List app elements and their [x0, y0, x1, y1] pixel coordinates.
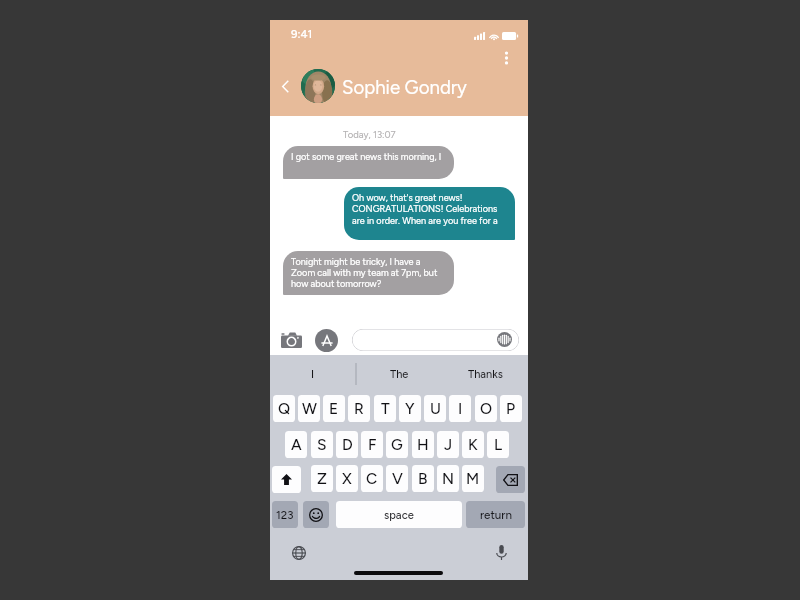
staticText: O: [480, 399, 493, 418]
staticText: Today, 13:07: [343, 129, 396, 140]
button[interactable]: L: [487, 431, 509, 458]
staticText: H: [417, 435, 429, 454]
staticText: A: [291, 435, 302, 454]
button[interactable]: Camera: [279, 330, 303, 349]
button[interactable]: I: [449, 395, 471, 422]
button[interactable]: Change keyboard: [289, 543, 309, 563]
button[interactable]: X: [336, 465, 358, 492]
button[interactable]: F: [361, 431, 383, 458]
staticText: E: [329, 399, 339, 418]
staticText: U: [430, 399, 441, 418]
button[interactable]: G: [386, 431, 408, 458]
button[interactable]: B: [412, 465, 434, 492]
staticText: R: [354, 399, 364, 418]
button[interactable]: N: [437, 465, 459, 492]
button[interactable]: S: [311, 431, 333, 458]
staticText: W: [302, 399, 317, 418]
staticText: Tonight might be tricky, I have a Zoom c…: [291, 256, 438, 289]
staticText: S: [317, 435, 327, 454]
button[interactable]: J: [437, 431, 459, 458]
staticText: B: [418, 469, 428, 488]
button[interactable]: R: [348, 395, 370, 422]
button[interactable]: Oh wow, that's great news! CONGRATULATIO…: [344, 187, 515, 240]
button[interactable]: More options: [496, 45, 516, 71]
button[interactable]: Audio message: [497, 332, 512, 347]
staticText: P: [506, 399, 516, 418]
staticText: V: [392, 469, 403, 488]
button[interactable]: O: [475, 395, 497, 422]
button[interactable]: Backspace: [496, 466, 525, 493]
button[interactable]: U: [424, 395, 446, 422]
button[interactable]: A: [285, 431, 307, 458]
staticText: Oh wow, that's great news! CONGRATULATIO…: [352, 192, 498, 226]
staticText: Q: [278, 399, 291, 418]
staticText: Sophie Gondry: [342, 76, 467, 98]
staticText: space: [384, 508, 414, 521]
button[interactable]: Z: [311, 465, 333, 492]
staticText: return: [480, 508, 512, 522]
staticText: C: [366, 469, 378, 488]
staticText: N: [442, 469, 454, 488]
button[interactable]: return: [466, 501, 525, 528]
staticText: L: [494, 435, 503, 454]
button[interactable]: E: [323, 395, 345, 422]
button[interactable]: I got some great news this morning, I: [283, 146, 454, 179]
button[interactable]: I: [270, 355, 356, 393]
staticText: Y: [405, 399, 415, 418]
button[interactable]: H: [412, 431, 434, 458]
staticText: F: [368, 435, 377, 454]
staticText: 123: [276, 508, 294, 522]
staticText: D: [342, 435, 353, 454]
button[interactable]: C: [361, 465, 383, 492]
staticText: I got some great news this morning, I: [291, 151, 442, 162]
button[interactable]: Back: [274, 75, 296, 97]
button[interactable]: Audio message: [352, 329, 519, 351]
button[interactable]: App Store: [315, 329, 338, 352]
staticText: J: [444, 435, 453, 454]
staticText: T: [381, 399, 390, 418]
button[interactable]: K: [462, 431, 484, 458]
button[interactable]: 123: [272, 501, 298, 528]
button[interactable]: Q: [273, 395, 295, 422]
staticText: M: [466, 469, 480, 488]
staticText: I: [458, 399, 463, 418]
staticText: The: [390, 368, 409, 381]
staticText: Thanks: [468, 368, 503, 381]
staticText: Z: [317, 469, 327, 488]
button[interactable]: M: [462, 465, 484, 492]
button[interactable]: Dictate: [491, 542, 511, 562]
button[interactable]: D: [336, 431, 358, 458]
button[interactable]: P: [500, 395, 522, 422]
button[interactable]: Thanks: [442, 355, 528, 393]
button[interactable]: V: [386, 465, 408, 492]
button[interactable]: T: [374, 395, 396, 422]
button[interactable]: space: [336, 501, 462, 528]
button[interactable]: Tonight might be tricky, I have a Zoom c…: [283, 251, 454, 295]
button[interactable]: Emoji: [303, 501, 329, 528]
button[interactable]: Shift: [272, 466, 301, 493]
staticText: G: [391, 435, 403, 454]
staticText: X: [342, 469, 352, 488]
button[interactable]: W: [298, 395, 320, 422]
staticText: K: [468, 435, 478, 454]
button[interactable]: Y: [399, 395, 421, 422]
staticText: 9:41: [291, 27, 313, 41]
staticText: I: [311, 368, 315, 381]
button[interactable]: The: [356, 355, 442, 393]
